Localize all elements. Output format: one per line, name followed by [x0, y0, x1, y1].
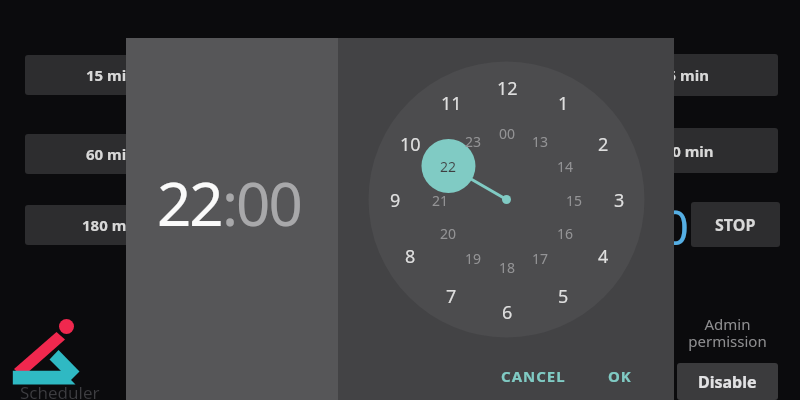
button[interactable]: 15 min	[25, 55, 197, 95]
staticText: 0:00:00	[526, 194, 690, 254]
staticText: CANCEL	[501, 366, 566, 386]
button[interactable]: 22	[157, 162, 301, 244]
button[interactable]: 60 min	[25, 134, 197, 174]
staticText: 15	[566, 191, 583, 210]
staticText: 00	[499, 124, 516, 143]
staticText: Scheduler	[20, 381, 100, 400]
staticText: 6	[502, 300, 513, 325]
staticText: 19	[465, 249, 482, 268]
staticText: 1	[558, 91, 569, 116]
staticText: 4	[598, 244, 609, 269]
staticText: 60 min	[86, 144, 136, 164]
staticText: 2	[598, 132, 609, 157]
button[interactable]: STOP	[691, 202, 780, 247]
staticText: 45 min	[659, 65, 709, 85]
staticText: 14	[557, 157, 574, 176]
staticText: STOP	[715, 214, 756, 236]
staticText: 22	[157, 162, 222, 244]
button[interactable]: OK	[596, 356, 644, 396]
staticText: 3	[614, 188, 625, 213]
staticText: 22	[440, 157, 457, 176]
staticText: OK	[608, 366, 632, 386]
staticText: 17	[532, 249, 549, 268]
staticText: 11	[441, 91, 462, 116]
staticText: 16	[557, 224, 574, 243]
button[interactable]: 45 min	[590, 54, 778, 96]
staticText: 23	[465, 132, 482, 151]
staticText: 12	[497, 76, 518, 101]
staticText: 7	[446, 284, 457, 309]
button[interactable]: 180 min	[25, 205, 197, 245]
staticText: 180 min	[82, 215, 141, 235]
staticText: 13	[532, 132, 549, 151]
button[interactable]: CANCEL	[493, 356, 573, 396]
staticText: 9	[390, 188, 401, 213]
staticText: Disable	[698, 371, 757, 393]
staticText: 5	[558, 284, 569, 309]
staticText: 10	[400, 132, 421, 157]
button[interactable]: Disable	[677, 363, 778, 400]
staticText: 21	[432, 191, 449, 210]
staticText: 20	[440, 224, 457, 243]
staticText: 15 min	[86, 65, 136, 85]
staticText: :00	[222, 162, 301, 244]
staticText: 120 min	[655, 141, 714, 161]
staticText: 8	[405, 244, 416, 269]
button[interactable]: 120 min	[590, 128, 778, 173]
staticText: Admin permission	[688, 314, 767, 352]
staticText: 18	[499, 258, 516, 277]
